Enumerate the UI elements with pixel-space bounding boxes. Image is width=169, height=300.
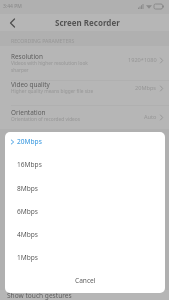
staticText: Videos with higher resolution look sharp… — [11, 60, 88, 74]
staticText: RECORDING PARAMETERS — [11, 37, 75, 44]
staticText: Resolution — [11, 52, 43, 61]
staticText: Auto — [144, 113, 157, 121]
button[interactable]: 20Mbps — [5, 132, 165, 153]
staticText: Show touch gestures — [7, 291, 72, 300]
staticText: Higher quality means bigger file size — [11, 88, 94, 95]
staticText: Video quality — [11, 80, 50, 89]
staticText: 3:44 PM — [3, 3, 22, 10]
button[interactable] — [0, 80, 169, 105]
button[interactable]: 1Mbps — [5, 246, 165, 269]
button[interactable]: Back — [4, 14, 21, 31]
staticText: 4Mbps — [17, 230, 39, 239]
button[interactable]: 4Mbps — [5, 223, 165, 246]
button[interactable]: 8Mbps — [5, 177, 165, 200]
staticText: Orientation — [11, 108, 46, 117]
button[interactable]: 16Mbps — [5, 153, 165, 176]
staticText: 6Mbps — [17, 207, 39, 216]
staticText: 20Mbps — [17, 137, 42, 146]
button[interactable]: Cancel — [5, 268, 165, 293]
button[interactable] — [0, 46, 169, 80]
staticText: 16Mbps — [17, 160, 42, 169]
staticText: Cancel — [75, 276, 96, 285]
button[interactable] — [0, 105, 169, 129]
staticText: 1920*1080 — [128, 56, 157, 64]
staticText: 1Mbps — [17, 253, 39, 262]
button[interactable]: 6Mbps — [5, 200, 165, 223]
button[interactable]: Show touch gestures — [0, 290, 169, 300]
staticText: 8Mbps — [17, 184, 39, 193]
staticText: Screen Recorder — [55, 17, 120, 28]
staticText: Orientation of recorded videos — [11, 116, 81, 123]
staticText: 20Mbps — [135, 84, 157, 92]
